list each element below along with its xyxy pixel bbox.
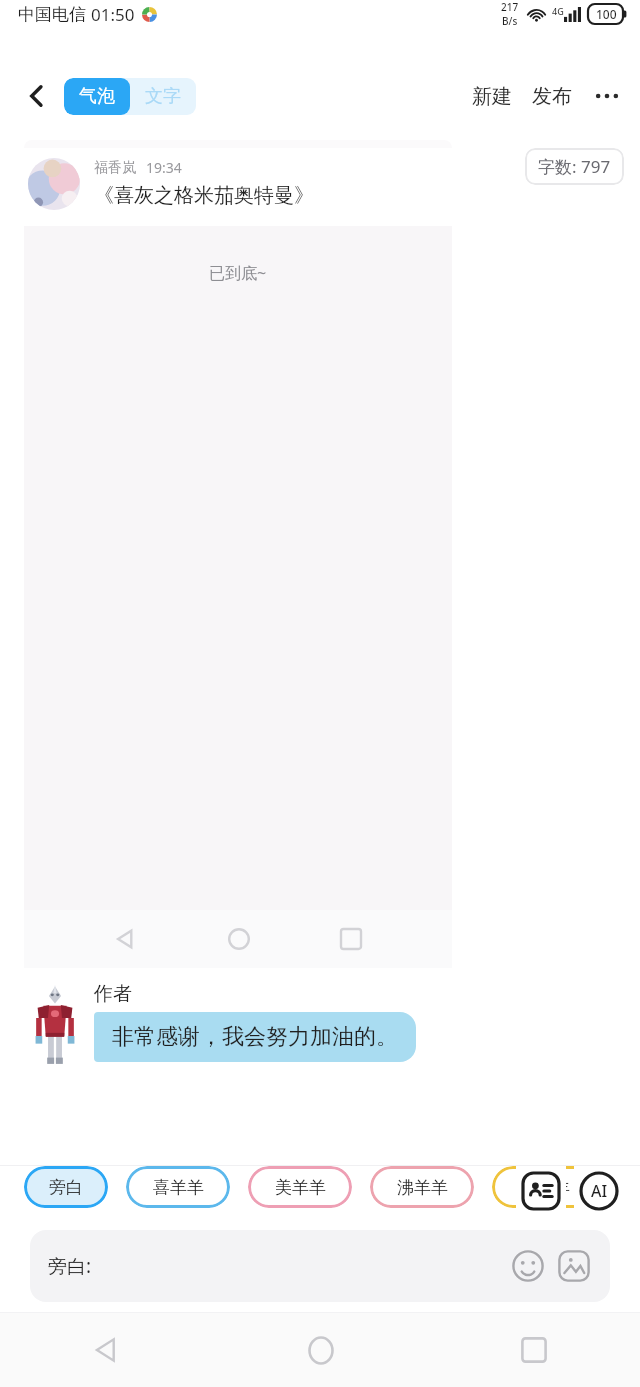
- button[interactable]: 喜羊羊: [126, 1166, 230, 1208]
- staticText: 中国电信: [18, 4, 86, 25]
- button[interactable]: Emoji: [508, 1246, 548, 1286]
- staticText: 19:34: [146, 158, 182, 177]
- button[interactable]: 旁白:: [30, 1230, 610, 1302]
- button[interactable]: 美羊羊: [248, 1166, 352, 1208]
- button[interactable]: AI assist: [574, 1166, 624, 1216]
- staticText: 已到底~: [209, 262, 267, 284]
- staticText: 发布: [532, 84, 572, 109]
- button[interactable]: 字数: 797: [525, 148, 624, 185]
- button[interactable]: 沸羊羊: [370, 1166, 474, 1208]
- staticText: 美羊羊: [275, 1177, 326, 1198]
- button[interactable]: Home: [214, 1313, 427, 1387]
- staticText: 作者: [94, 982, 132, 1006]
- staticText: 字数: 797: [538, 155, 611, 178]
- staticText: 4G: [552, 5, 564, 17]
- staticText: 《喜灰之格米茄奥特曼》: [94, 183, 314, 208]
- button[interactable]: 旁白: [24, 1166, 108, 1208]
- button[interactable]: Recent apps: [427, 1313, 640, 1387]
- staticText: 217: [501, 0, 519, 14]
- staticText: 非常感谢，我会努力加油的。: [112, 1023, 398, 1051]
- button[interactable]: 文字: [130, 78, 196, 115]
- staticText: 旁白: [49, 1177, 83, 1198]
- button[interactable]: Back: [14, 73, 60, 119]
- button[interactable]: 气泡: [64, 78, 130, 115]
- staticText: AI: [591, 1180, 608, 1202]
- staticText: 懒羊羊: [519, 1177, 570, 1198]
- button[interactable]: More options: [590, 79, 624, 113]
- button[interactable]: 新建: [468, 76, 516, 117]
- button[interactable]: 非常感谢，我会努力加油的。: [94, 1012, 416, 1062]
- staticText: 沸羊羊: [397, 1177, 448, 1198]
- staticText: B/s: [502, 14, 518, 28]
- button[interactable]: Add image: [554, 1246, 594, 1286]
- button[interactable]: Back: [0, 1313, 214, 1387]
- button[interactable]: Characters: [516, 1166, 566, 1216]
- staticText: 气泡: [79, 85, 115, 108]
- button[interactable]: 懒羊羊: [492, 1166, 596, 1208]
- staticText: 喜羊羊: [153, 1177, 204, 1198]
- staticText: 旁白:: [48, 1253, 92, 1279]
- button[interactable]: 发布: [528, 76, 576, 117]
- staticText: 100: [596, 6, 617, 22]
- staticText: 01:50: [91, 3, 135, 26]
- staticText: 福香岚: [94, 159, 136, 177]
- staticText: 新建: [472, 84, 512, 109]
- staticText: 文字: [145, 85, 181, 108]
